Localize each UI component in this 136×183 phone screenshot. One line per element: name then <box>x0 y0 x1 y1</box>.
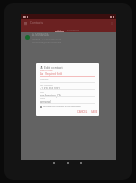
staticText: Include this contact in my favorites <box>43 105 81 108</box>
staticText: SAVE <box>91 110 98 114</box>
staticText: mobile +1 415 555 0132 <box>32 37 62 40</box>
staticText: Aa Required field <box>40 72 63 76</box>
staticText: Contacts <box>30 21 44 25</box>
staticText: Type <box>40 97 45 100</box>
button[interactable]: A. MIRANDA <box>21 32 116 44</box>
staticText: FIRST NAME <box>40 69 53 72</box>
staticText: A. MIRANDA <box>32 33 49 37</box>
button[interactable]: Back <box>47 160 60 165</box>
staticText: Edit contact <box>44 65 63 70</box>
button[interactable]: Include this contact in my favorites <box>40 105 81 108</box>
button[interactable]: ALL <box>54 27 65 31</box>
staticText: City <box>40 91 44 94</box>
staticText: FAVORITES <box>67 28 80 31</box>
staticText: Address <box>40 78 49 81</box>
button[interactable]: More options <box>108 19 116 27</box>
button[interactable]: FAVORITES <box>65 27 81 31</box>
button[interactable]: SAVE <box>90 109 99 115</box>
staticText: san francisco, CA <box>40 94 61 98</box>
staticText: personal <box>40 100 51 104</box>
staticText: amiranda@mail.example <box>32 40 62 43</box>
button[interactable]: Navigation menu <box>21 19 29 27</box>
button[interactable]: Home <box>61 160 74 165</box>
staticText: +1 415 555 0132 <box>40 87 60 91</box>
button[interactable]: Recent apps <box>74 160 87 165</box>
staticText: ALL <box>57 28 62 31</box>
staticText: CANCEL <box>77 110 88 114</box>
button[interactable]: CANCEL <box>76 109 89 115</box>
staticText: Tel. Number <box>40 84 53 87</box>
